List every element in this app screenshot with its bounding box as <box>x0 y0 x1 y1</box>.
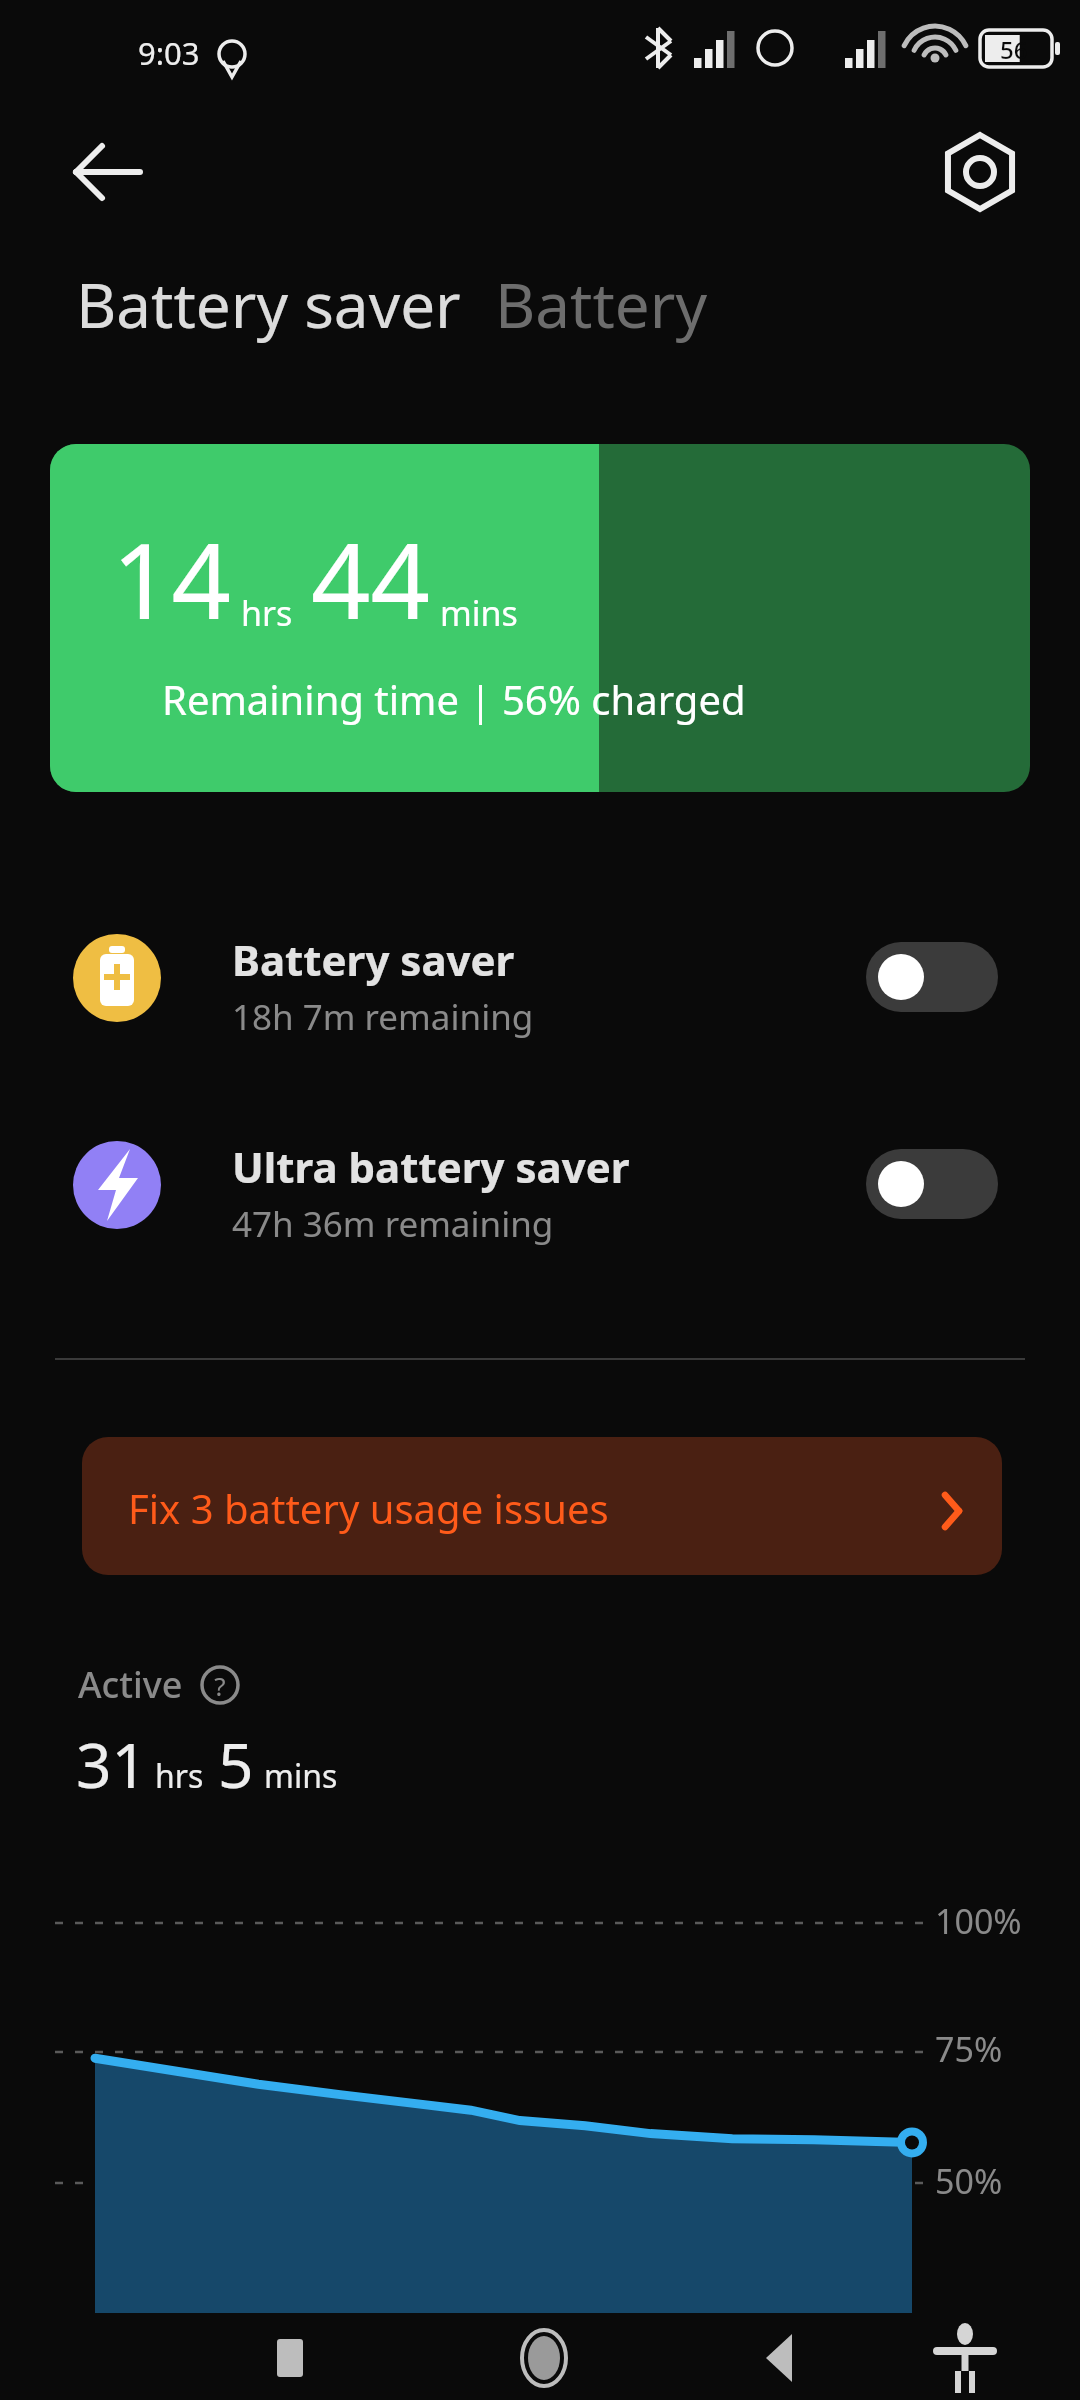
button[interactable]: Settings <box>930 122 1030 222</box>
staticText: 9:03 <box>138 32 200 74</box>
staticText: 75% <box>935 2026 1003 2072</box>
staticText: 44 <box>311 508 430 650</box>
button[interactable]: Toggle Battery saver <box>866 942 998 1012</box>
staticText: 100% <box>935 1898 1022 1944</box>
button[interactable]: Back <box>740 2318 820 2398</box>
staticText: ? <box>214 1668 226 1703</box>
staticText: 50% <box>935 2158 1003 2204</box>
staticText: mins <box>264 1754 338 1798</box>
staticText: 5 <box>218 1722 254 1806</box>
button[interactable]: 14 <box>50 444 1030 792</box>
staticText: hrs <box>241 590 293 636</box>
staticText: 47h 36m remaining <box>232 1200 554 1248</box>
staticText: Battery saver <box>232 931 515 988</box>
staticText: Battery <box>495 262 708 346</box>
staticText: 14 <box>112 508 231 650</box>
button[interactable]: Battery saver <box>0 898 1080 1058</box>
button[interactable]: Battery saver <box>76 262 461 346</box>
button[interactable]: Fix 3 battery usage issues <box>82 1437 1002 1575</box>
staticText: 31 <box>76 1722 147 1806</box>
staticText: Ultra battery saver <box>232 1138 630 1195</box>
button[interactable]: Toggle Ultra battery saver <box>866 1149 998 1219</box>
button[interactable]: Help <box>199 1664 241 1706</box>
staticText: hrs <box>155 1754 204 1798</box>
staticText: Fix 3 battery usage issues <box>128 1481 609 1535</box>
button[interactable]: Ultra battery saver <box>0 1105 1080 1265</box>
button[interactable]: Recents <box>250 2318 330 2398</box>
staticText: Active <box>78 1660 183 1709</box>
button[interactable]: Back <box>50 122 160 222</box>
button[interactable]: Accessibility <box>920 2312 1010 2400</box>
button[interactable]: Home <box>500 2314 588 2400</box>
staticText: Battery saver <box>76 262 461 346</box>
staticText: mins <box>440 590 518 636</box>
staticText: 56 <box>1000 33 1028 66</box>
button[interactable]: Battery <box>495 262 708 346</box>
staticText: Remaining time | 56% charged <box>162 672 746 726</box>
staticText: 18h 7m remaining <box>232 993 534 1041</box>
